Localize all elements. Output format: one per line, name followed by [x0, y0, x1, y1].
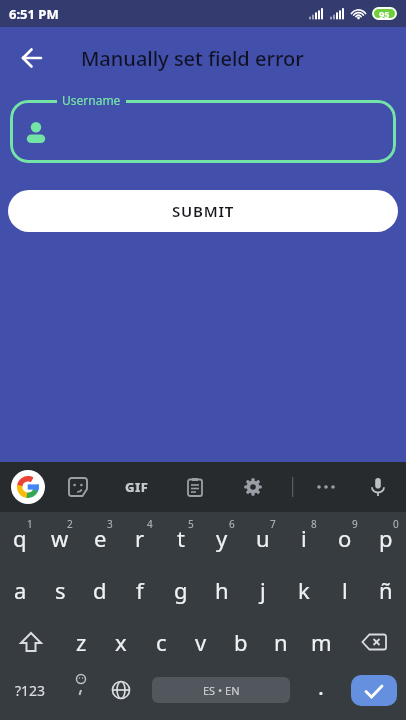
- staticText: t: [177, 523, 185, 553]
- staticText: p: [379, 523, 393, 553]
- button[interactable]: r: [120, 512, 160, 564]
- button[interactable]: l: [324, 564, 365, 616]
- button[interactable]: [61, 668, 101, 720]
- button[interactable]: GIF: [118, 462, 156, 512]
- button[interactable]: ?123: [0, 668, 61, 720]
- staticText: ?123: [15, 681, 46, 700]
- staticText: 3: [107, 517, 113, 531]
- staticText: 5: [188, 517, 194, 531]
- staticText: g: [174, 575, 188, 605]
- staticText: h: [215, 575, 229, 605]
- button[interactable]: d: [80, 564, 120, 616]
- button[interactable]: u: [242, 512, 283, 564]
- staticText: e: [94, 523, 107, 553]
- button[interactable]: w: [40, 512, 80, 564]
- button[interactable]: [341, 668, 406, 720]
- button[interactable]: [0, 616, 61, 668]
- staticText: o: [338, 523, 352, 553]
- button[interactable]: t: [160, 512, 201, 564]
- button[interactable]: e: [80, 512, 120, 564]
- button[interactable]: q: [0, 512, 40, 564]
- button[interactable]: [11, 470, 45, 504]
- button[interactable]: [356, 462, 400, 512]
- button[interactable]: SUBMIT: [8, 190, 398, 232]
- staticText: 6: [229, 517, 235, 531]
- staticText: y: [216, 523, 228, 553]
- button[interactable]: x: [101, 616, 141, 668]
- button[interactable]: f: [120, 564, 160, 616]
- button[interactable]: ñ: [365, 564, 406, 616]
- staticText: SUBMIT: [172, 201, 235, 221]
- button[interactable]: [56, 462, 100, 512]
- staticText: c: [156, 627, 167, 657]
- button[interactable]: o: [324, 512, 365, 564]
- button[interactable]: [173, 462, 217, 512]
- staticText: ñ: [379, 575, 393, 605]
- staticText: w: [51, 523, 69, 553]
- staticText: 7: [270, 517, 276, 531]
- staticText: f: [136, 575, 144, 605]
- button[interactable]: c: [141, 616, 181, 668]
- button[interactable]: [10, 100, 396, 163]
- button[interactable]: m: [301, 616, 341, 668]
- button[interactable]: j: [242, 564, 283, 616]
- staticText: 8: [311, 517, 317, 531]
- staticText: s: [55, 575, 66, 605]
- staticText: n: [274, 627, 288, 657]
- staticText: Username: [62, 92, 121, 108]
- staticText: 95: [379, 8, 390, 20]
- staticText: 4: [147, 517, 153, 531]
- staticText: 9: [352, 517, 358, 531]
- staticText: q: [13, 523, 27, 553]
- staticText: i: [301, 523, 307, 553]
- button[interactable]: [0, 27, 64, 89]
- staticText: a: [14, 575, 27, 605]
- button[interactable]: [101, 668, 141, 720]
- staticText: d: [93, 575, 107, 605]
- button[interactable]: h: [201, 564, 242, 616]
- button[interactable]: [231, 462, 275, 512]
- staticText: k: [298, 575, 310, 605]
- staticText: r: [135, 523, 145, 553]
- button[interactable]: ES • EN: [141, 668, 301, 720]
- button[interactable]: i: [283, 512, 324, 564]
- staticText: b: [234, 627, 248, 657]
- button[interactable]: k: [283, 564, 324, 616]
- button[interactable]: z: [61, 616, 101, 668]
- staticText: x: [115, 627, 127, 657]
- button[interactable]: p: [365, 512, 406, 564]
- button[interactable]: g: [160, 564, 201, 616]
- staticText: 0: [393, 517, 399, 531]
- staticText: 1: [27, 517, 33, 531]
- button[interactable]: [341, 616, 406, 668]
- staticText: u: [256, 523, 270, 553]
- button[interactable]: n: [261, 616, 301, 668]
- button[interactable]: y: [201, 512, 242, 564]
- button[interactable]: s: [40, 564, 80, 616]
- staticText: 2: [67, 517, 73, 531]
- staticText: ES • EN: [203, 683, 240, 698]
- staticText: v: [195, 627, 207, 657]
- button[interactable]: b: [221, 616, 261, 668]
- button[interactable]: v: [181, 616, 221, 668]
- staticText: 6:51 PM: [9, 5, 59, 23]
- button[interactable]: a: [0, 564, 40, 616]
- staticText: Manually set field error: [81, 45, 304, 72]
- button[interactable]: .: [301, 668, 341, 720]
- staticText: z: [76, 627, 87, 657]
- staticText: m: [311, 627, 332, 657]
- staticText: .: [318, 671, 324, 701]
- button[interactable]: [304, 462, 348, 512]
- staticText: l: [342, 575, 348, 605]
- staticText: j: [260, 575, 266, 605]
- staticText: GIF: [125, 478, 149, 496]
